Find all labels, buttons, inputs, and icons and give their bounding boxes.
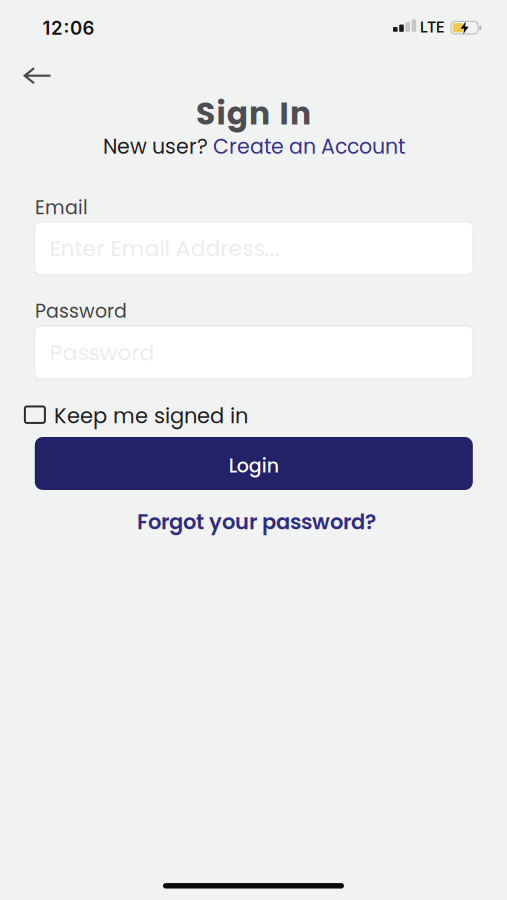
button[interactable]: [23, 67, 51, 84]
staticText: Keep me signed in: [54, 401, 248, 431]
button[interactable]: Login: [35, 437, 473, 490]
staticText: Sign In: [196, 92, 311, 135]
staticText: Password: [35, 298, 127, 324]
staticText: Create an Account: [213, 132, 405, 161]
button[interactable]: Keep me signed in: [25, 401, 248, 431]
staticText: Password: [50, 337, 155, 368]
button[interactable]: Password: [35, 326, 473, 379]
button[interactable]: Enter Email Address...: [35, 222, 473, 275]
staticText: Login: [229, 452, 279, 479]
staticText: LTE: [420, 19, 444, 36]
button[interactable]: Forgot your password?: [137, 507, 376, 537]
staticText: Forgot your password?: [137, 507, 376, 537]
staticText: Email: [35, 194, 88, 221]
button[interactable]: Create an Account: [213, 132, 405, 161]
staticText: New user?: [103, 132, 208, 161]
staticText: Enter Email Address...: [50, 233, 280, 264]
staticText: 12:06: [42, 17, 94, 39]
